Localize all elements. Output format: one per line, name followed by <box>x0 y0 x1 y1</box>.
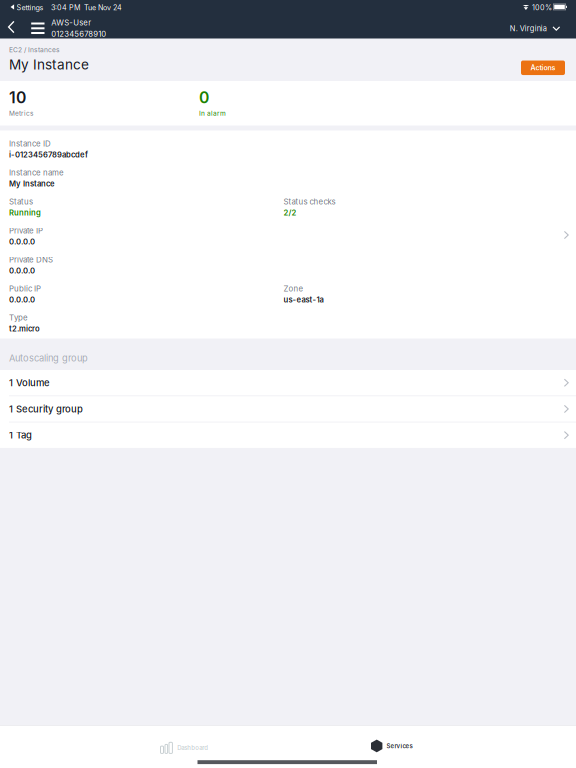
staticText: 0 <box>199 88 209 107</box>
staticText: Zone <box>283 284 303 293</box>
staticText: Instance name <box>9 168 64 177</box>
staticText: 3:04 PM <box>51 3 81 12</box>
staticText: Running <box>9 208 41 217</box>
staticText: 0.0.0.0 <box>9 237 35 246</box>
staticText: 0.0.0.0 <box>9 295 35 304</box>
staticText: 1 Volume <box>9 377 50 388</box>
staticText: 1 Tag <box>9 429 32 441</box>
staticText: Metrics <box>9 109 33 117</box>
button[interactable]: Back <box>3 16 20 38</box>
staticText: 012345678910 <box>51 29 106 39</box>
button[interactable]: Dashboard <box>160 737 208 759</box>
staticText: 1 Security group <box>9 403 83 415</box>
button[interactable]: Actions <box>521 60 565 75</box>
staticText: My Instance <box>9 56 89 73</box>
staticText: Status checks <box>283 197 335 206</box>
button[interactable]: 1 Security group <box>0 396 576 422</box>
staticText: EC2 / Instances <box>9 46 60 54</box>
staticText: Settings <box>16 3 43 12</box>
staticText: t2.micro <box>9 324 40 333</box>
button[interactable]: Services <box>371 734 412 758</box>
staticText: Status <box>9 197 33 206</box>
button[interactable]: 1 Volume <box>0 370 576 395</box>
staticText: Type <box>9 313 28 322</box>
staticText: 0.0.0.0 <box>9 266 35 275</box>
staticText: My Instance <box>9 179 55 188</box>
staticText: us-east-1a <box>283 295 323 304</box>
staticText: AWS-User <box>51 18 91 27</box>
staticText: N. Virginia <box>510 24 547 33</box>
staticText: Private DNS <box>9 255 53 264</box>
staticText: In alarm <box>199 109 226 117</box>
staticText: 2/2 <box>283 208 296 217</box>
staticText: Private IP <box>9 226 43 235</box>
staticText: 10 <box>9 88 26 107</box>
staticText: Actions <box>530 63 555 72</box>
staticText: 100% <box>532 3 552 12</box>
staticText: Autoscaling group <box>9 352 88 364</box>
staticText: Public IP <box>9 284 41 293</box>
staticText: Services <box>386 742 412 750</box>
button[interactable]: AWS-User <box>31 16 106 40</box>
staticText: Tue Nov 24 <box>84 3 122 12</box>
button[interactable]: 1 Tag <box>0 422 576 448</box>
staticText: Dashboard <box>177 744 208 751</box>
staticText: i-0123456789abcdef <box>9 150 88 159</box>
staticText: Instance ID <box>9 139 51 148</box>
button[interactable]: N. Virginia <box>510 20 560 37</box>
